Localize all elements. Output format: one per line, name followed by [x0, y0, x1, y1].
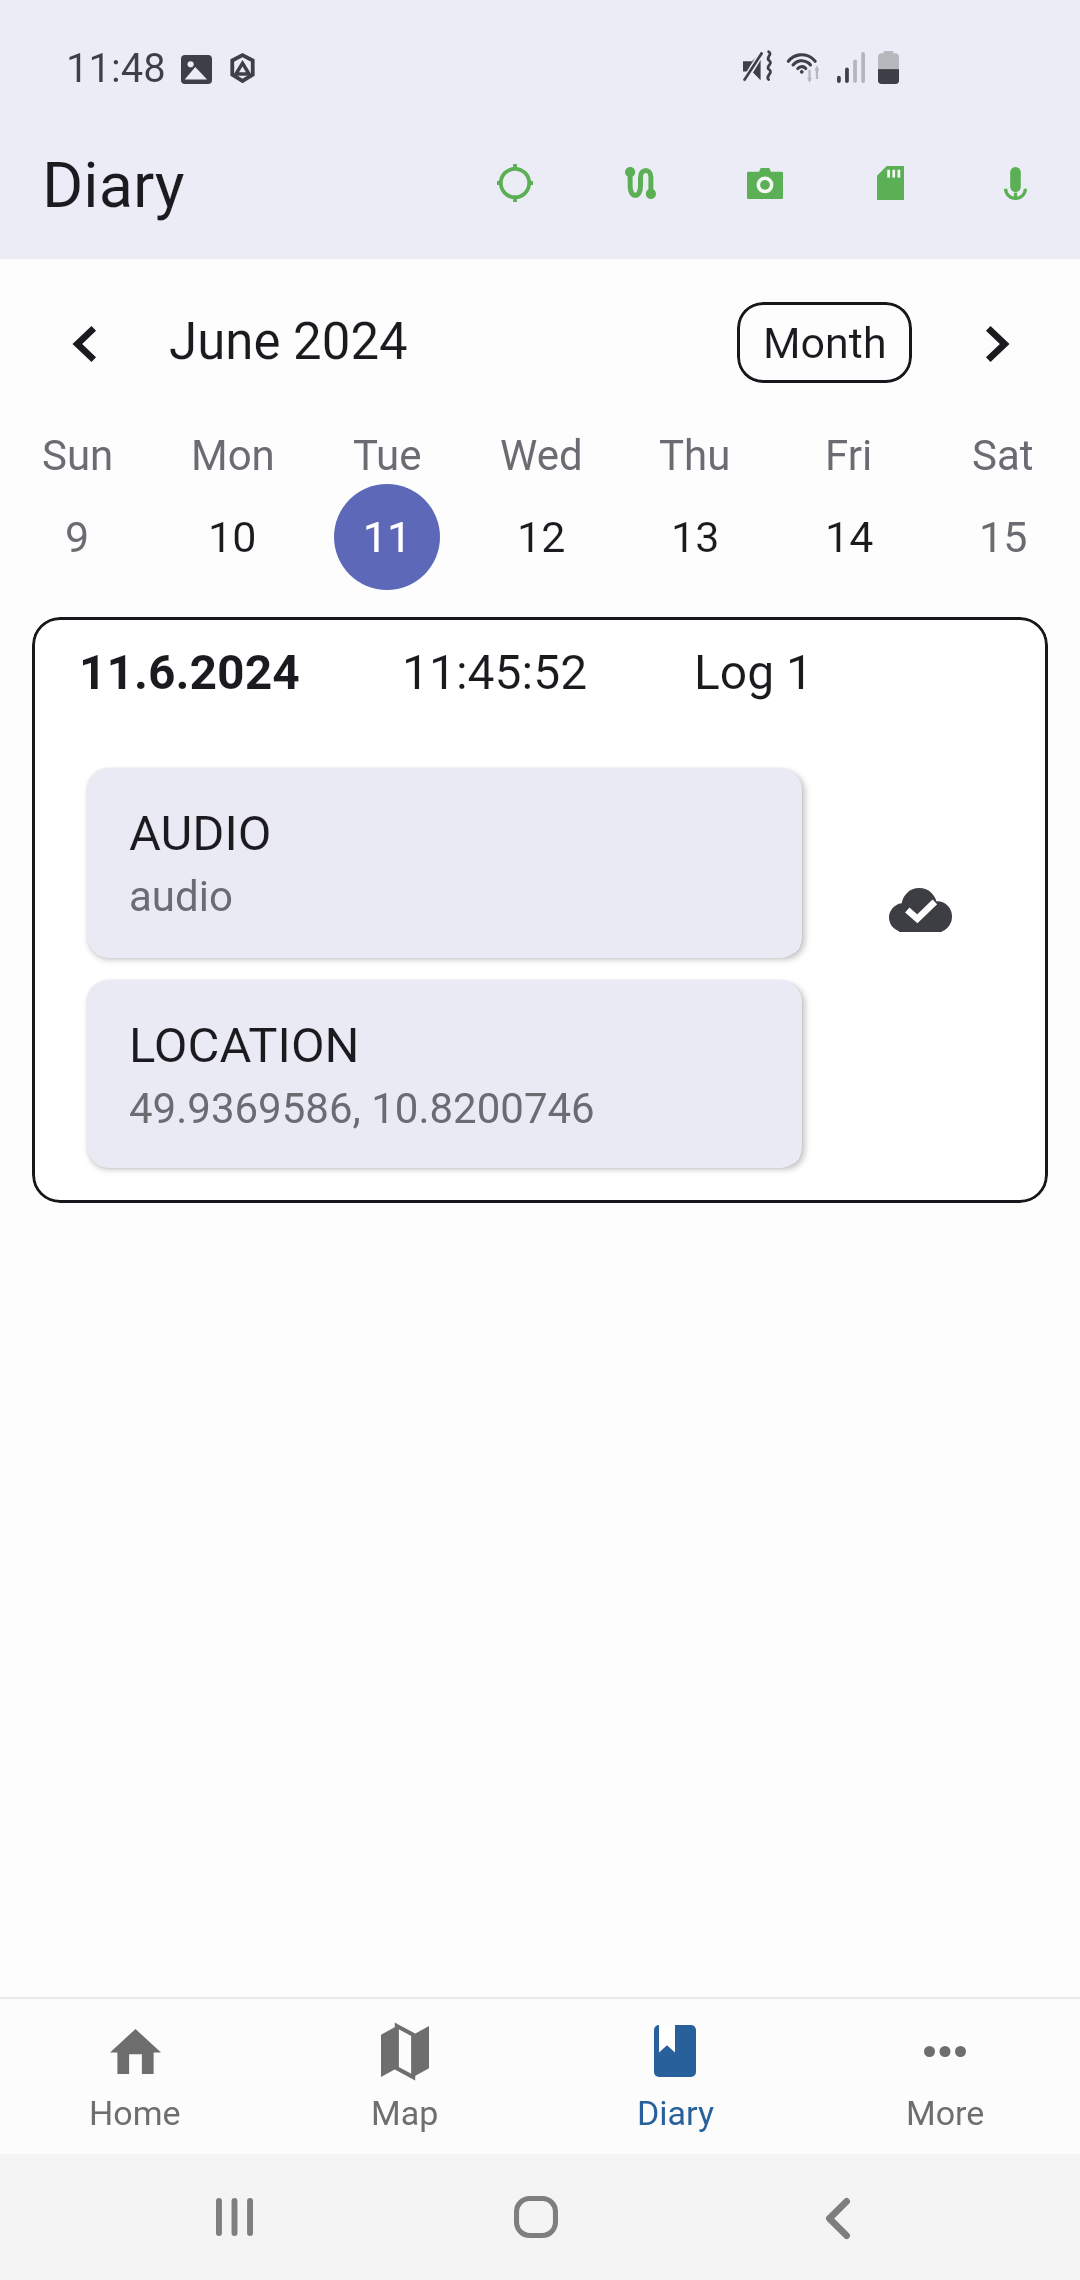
- button[interactable]: Next month: [952, 298, 1044, 390]
- staticText: Month: [763, 318, 887, 368]
- staticText: 15: [979, 512, 1028, 562]
- staticText: 9: [65, 512, 90, 562]
- button[interactable]: 9: [0, 483, 155, 591]
- button[interactable]: 14: [772, 483, 926, 591]
- button[interactable]: Storage: [827, 136, 952, 259]
- staticText: 49.9369586, 10.8200746: [129, 1084, 595, 1133]
- staticText: 13: [671, 512, 720, 562]
- button[interactable]: Locate: [452, 136, 577, 259]
- staticText: 11:48: [66, 45, 166, 92]
- button[interactable]: Previous month: [38, 298, 130, 390]
- staticText: Map: [371, 2093, 439, 2133]
- button[interactable]: AUDIO: [87, 768, 802, 958]
- staticText: 11:45:52: [402, 644, 588, 700]
- staticText: Thu: [659, 431, 731, 480]
- button[interactable]: 11: [310, 483, 464, 591]
- button[interactable]: Back: [788, 2168, 888, 2268]
- button[interactable]: Camera: [702, 136, 827, 259]
- staticText: Mon: [191, 431, 275, 480]
- staticText: 10: [208, 512, 257, 562]
- button[interactable]: Recent apps: [184, 2167, 284, 2267]
- button[interactable]: 11.6.2024: [32, 617, 1048, 1203]
- staticText: Fri: [825, 431, 873, 480]
- staticText: Diary: [42, 149, 185, 223]
- staticText: Sat: [972, 431, 1034, 480]
- button[interactable]: LOCATION: [87, 980, 802, 1168]
- staticText: Diary: [637, 2093, 714, 2133]
- button[interactable]: Record audio: [952, 136, 1077, 259]
- button[interactable]: 10: [155, 483, 310, 591]
- staticText: 12: [517, 512, 566, 562]
- staticText: June 2024: [169, 312, 408, 372]
- staticText: Wed: [500, 431, 583, 480]
- staticText: audio: [129, 872, 233, 921]
- button[interactable]: Diary: [540, 1999, 810, 2154]
- staticText: AUDIO: [129, 805, 272, 862]
- button[interactable]: Home: [486, 2167, 586, 2267]
- button[interactable]: 13: [618, 483, 772, 591]
- button[interactable]: Map: [270, 1999, 540, 2154]
- button[interactable]: 15: [926, 483, 1080, 591]
- staticText: Tue: [353, 431, 422, 480]
- staticText: Home: [89, 2093, 181, 2133]
- button[interactable]: Month: [737, 302, 912, 383]
- staticText: LOCATION: [129, 1017, 360, 1074]
- button[interactable]: 12: [464, 483, 618, 591]
- staticText: More: [906, 2093, 985, 2133]
- staticText: 11: [363, 512, 412, 562]
- staticText: Sun: [42, 431, 114, 480]
- button[interactable]: Track: [577, 136, 702, 259]
- button[interactable]: More: [810, 1999, 1080, 2154]
- button[interactable]: Home: [0, 1999, 270, 2154]
- staticText: 14: [825, 512, 874, 562]
- staticText: Log 1: [694, 644, 814, 700]
- staticText: 11.6.2024: [79, 644, 300, 700]
